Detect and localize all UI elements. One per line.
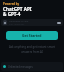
button[interactable]: Unlimited AI chat: [1, 19, 63, 26]
staticText: Unlimited AI chat: [9, 19, 29, 22]
staticText: Get Started: [22, 33, 42, 38]
staticText: Fast responses: [9, 23, 25, 26]
staticText: Unlimited messages: [8, 65, 33, 69]
staticText: Powered by: [3, 2, 20, 6]
button[interactable]: Get Started: [6, 31, 58, 40]
button[interactable]: Unlimited messages: [1, 62, 63, 71]
staticText: & GPT-4: [3, 11, 21, 17]
staticText: Ask anything and get instant smart answe…: [7, 45, 57, 54]
staticText: ChatGPT API: [3, 6, 32, 12]
